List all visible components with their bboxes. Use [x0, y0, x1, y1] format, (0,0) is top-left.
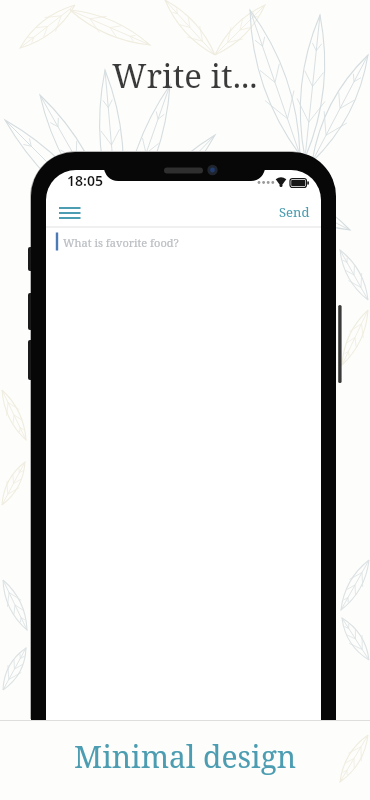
button[interactable]	[52, 200, 88, 226]
staticText: Send	[279, 203, 310, 221]
staticText: What is favorite food?	[63, 235, 179, 250]
staticText: Write it...	[112, 53, 258, 98]
button[interactable]: What is favorite food?	[46, 228, 321, 256]
button[interactable]: Send	[279, 203, 310, 221]
staticText: 18:05	[67, 171, 103, 190]
staticText: Minimal design	[74, 736, 297, 777]
